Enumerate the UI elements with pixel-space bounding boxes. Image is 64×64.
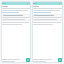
button[interactable]: App bar — [32, 2, 63, 5]
button[interactable]: Add — [58, 58, 62, 62]
button[interactable] — [33, 14, 62, 21]
button[interactable]: Add — [26, 58, 30, 62]
button[interactable] — [2, 14, 30, 21]
button[interactable]: App bar — [1, 2, 31, 5]
